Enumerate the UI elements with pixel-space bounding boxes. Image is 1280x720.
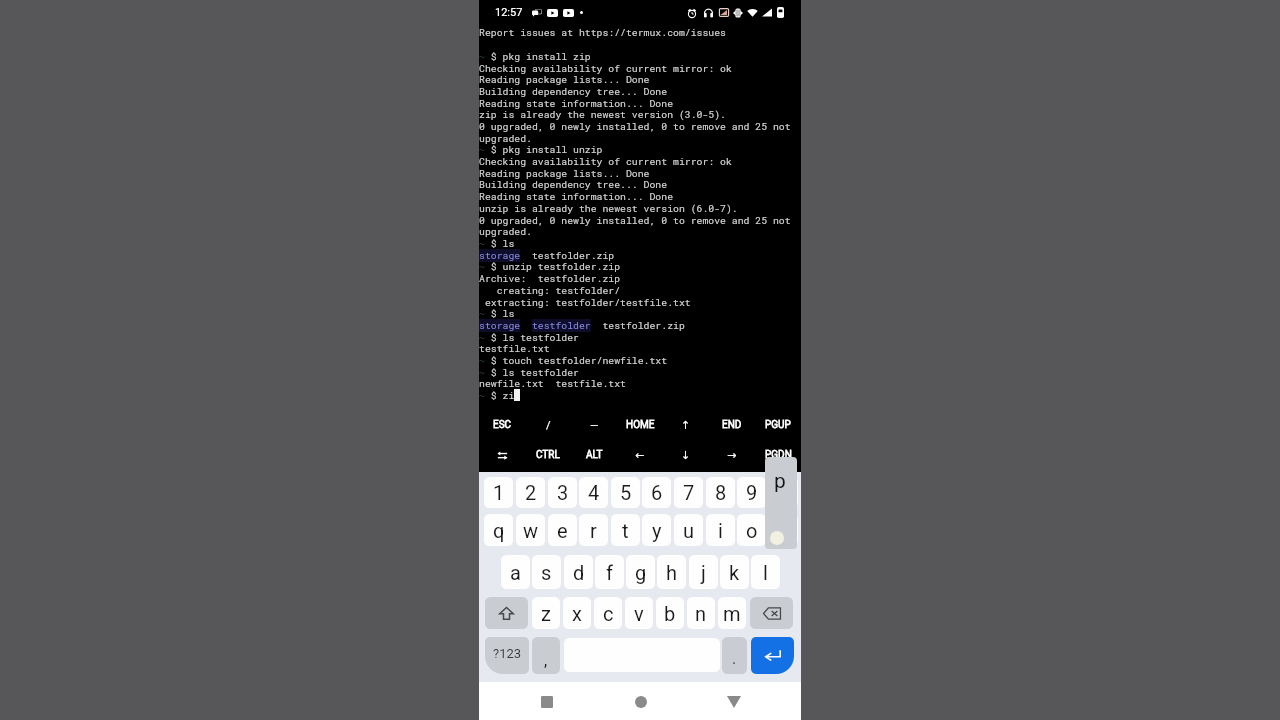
button[interactable]: f (595, 555, 624, 589)
button[interactable]: 6 (642, 477, 671, 508)
button[interactable]: d (564, 555, 593, 589)
button[interactable]: m (718, 597, 746, 629)
button[interactable]: 4 (579, 477, 608, 508)
staticText: Building dependency tree... Done (479, 178, 668, 191)
staticText: ↑ (681, 419, 691, 432)
button[interactable]: Hide keyboard (720, 688, 748, 716)
button[interactable]: / (525, 410, 571, 440)
button[interactable]: y (642, 514, 671, 546)
button[interactable]: o (737, 514, 766, 546)
staticText: c (603, 602, 614, 625)
button[interactable]: ↓ (663, 440, 709, 470)
staticText: a (510, 561, 521, 584)
staticText: ~ $ zi (479, 389, 515, 402)
button[interactable]: v (625, 597, 653, 629)
button[interactable]: PGDN (755, 440, 801, 470)
button[interactable]: 5 (611, 477, 640, 508)
button[interactable]: ↑ (663, 410, 709, 440)
button[interactable]: s (532, 555, 561, 589)
button[interactable]: , (532, 637, 560, 674)
button[interactable]: e (548, 514, 577, 546)
button[interactable]: k (720, 555, 749, 589)
staticText: w (523, 519, 539, 542)
staticText: h (666, 561, 678, 584)
button[interactable]: g (626, 555, 655, 589)
staticText: 4 (588, 481, 600, 504)
button[interactable]: Tab (479, 440, 525, 470)
staticText: ~ $ ls testfolder (479, 366, 579, 379)
button[interactable]: q (484, 514, 513, 546)
button[interactable]: r (579, 514, 608, 546)
button[interactable]: END (709, 410, 755, 440)
button[interactable]: Backspace (750, 597, 793, 629)
button[interactable]: w (516, 514, 545, 546)
button[interactable]: Enter (751, 637, 794, 674)
button[interactable]: x (563, 597, 591, 629)
button[interactable]: ?123 (485, 637, 529, 674)
button[interactable]: ESC (479, 410, 525, 440)
staticText: t (622, 519, 629, 542)
button[interactable]: 0 (769, 477, 798, 508)
staticText: 3 (557, 481, 569, 504)
staticText: HOME (626, 419, 655, 431)
staticText: 8 (715, 481, 727, 504)
button[interactable]: i (706, 514, 735, 546)
button[interactable]: ALT (571, 440, 617, 470)
button[interactable]: z (532, 597, 560, 629)
staticText: Checking availability of current mirror:… (479, 62, 732, 75)
button[interactable]: CTRL (525, 440, 571, 470)
staticText: , (544, 651, 548, 670)
button[interactable]: 8 (706, 477, 735, 508)
staticText: ~ $ ls testfolder (479, 331, 579, 344)
staticText: ~ $ touch testfolder/newfile.txt (479, 354, 668, 367)
button[interactable]: p (769, 514, 798, 546)
staticText: creating: testfolder/ (479, 284, 621, 297)
staticText: Reading state information... Done (479, 97, 674, 110)
staticText: CTRL (536, 449, 560, 461)
button[interactable]: 7 (674, 477, 703, 508)
button[interactable]: Home (627, 688, 655, 716)
button[interactable]: 1 (484, 477, 513, 508)
button[interactable]: Shift (485, 597, 528, 629)
staticText: o (746, 519, 758, 542)
staticText: ↓ (681, 449, 691, 462)
staticText: p (778, 519, 790, 542)
staticText: . (732, 649, 737, 668)
button[interactable]: 2 (516, 477, 545, 508)
staticText: 5 (620, 481, 632, 504)
staticText: u (683, 519, 695, 542)
button[interactable]: . (722, 637, 747, 674)
button[interactable]: h (657, 555, 686, 589)
button[interactable]: PGUP (755, 410, 801, 440)
button[interactable]: 9 (737, 477, 766, 508)
staticText: 0 upgraded, 0 newly installed, 0 to remo… (479, 214, 791, 227)
staticText: / (546, 419, 551, 432)
button[interactable]: — (571, 410, 617, 440)
button[interactable]: j (689, 555, 718, 589)
button[interactable]: b (656, 597, 684, 629)
staticText: e (557, 519, 568, 542)
button[interactable]: l (751, 555, 780, 589)
staticText: 0 (778, 481, 790, 504)
staticText: newfile.txt testfile.txt (479, 377, 626, 390)
button[interactable]: → (709, 440, 755, 470)
button[interactable]: a (501, 555, 530, 589)
staticText: extracting: testfolder/testfile.txt (479, 296, 691, 309)
button[interactable]: 3 (548, 477, 577, 508)
staticText: Checking availability of current mirror:… (479, 155, 732, 168)
staticText: — (590, 419, 599, 432)
staticText: ALT (586, 449, 603, 461)
staticText: zip is already the newest version (3.0-5… (479, 108, 726, 121)
button[interactable]: n (687, 597, 715, 629)
button[interactable]: c (594, 597, 622, 629)
button[interactable]: u (674, 514, 703, 546)
staticText: v (634, 602, 644, 625)
staticText: upgraded. (479, 132, 532, 145)
button[interactable]: t (611, 514, 640, 546)
button[interactable]: HOME (617, 410, 663, 440)
button[interactable]: ← (617, 440, 663, 470)
staticText: y (652, 519, 662, 542)
staticText: storage testfolder.zip (479, 249, 615, 262)
button[interactable]: Back (533, 688, 561, 716)
